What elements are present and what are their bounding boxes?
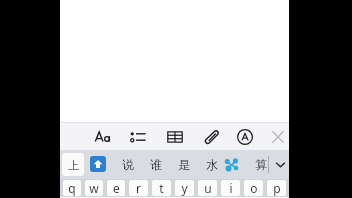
button[interactable]: Attach file: [200, 127, 220, 146]
button[interactable]: p: [267, 180, 286, 196]
button[interactable]: Bulleted list: [128, 127, 148, 146]
button[interactable]: 水: [201, 154, 223, 175]
button[interactable]: Expand candidates: [272, 156, 289, 173]
button[interactable]: 谁: [145, 154, 167, 175]
button[interactable]: 算: [250, 154, 272, 175]
staticText: q: [68, 180, 76, 196]
staticText: i: [229, 180, 233, 196]
button[interactable]: y: [175, 180, 194, 196]
button[interactable]: Insert table: [165, 127, 185, 146]
staticText: r: [136, 180, 141, 196]
button[interactable]: Close: [268, 127, 288, 146]
staticText: 说: [122, 157, 134, 172]
staticText: y: [181, 180, 188, 196]
staticText: u: [204, 180, 212, 196]
button[interactable]: Markup: [235, 127, 255, 146]
staticText: 是: [178, 157, 190, 172]
button[interactable]: w: [85, 180, 103, 196]
staticText: 上: [68, 158, 79, 172]
button[interactable]: e: [107, 180, 125, 196]
button[interactable]: i: [221, 180, 240, 196]
staticText: 水: [206, 157, 218, 172]
button[interactable]: u: [198, 180, 217, 196]
button[interactable]: o: [244, 180, 263, 196]
button[interactable]: q: [63, 180, 81, 196]
staticText: 算: [255, 157, 267, 172]
button[interactable]: 是: [173, 154, 195, 175]
staticText: t: [159, 180, 164, 196]
staticText: w: [89, 180, 99, 196]
button[interactable]: Shift: [90, 156, 106, 172]
button[interactable]: r: [129, 180, 148, 196]
staticText: o: [250, 180, 258, 196]
button[interactable]: 说: [117, 154, 139, 175]
button[interactable]: Emoji: [223, 156, 239, 172]
button[interactable]: Text format: [93, 127, 113, 146]
staticText: e: [113, 180, 120, 196]
staticText: 谁: [150, 157, 162, 172]
button[interactable]: 上: [62, 153, 84, 176]
button[interactable]: t: [152, 180, 171, 196]
staticText: p: [273, 180, 281, 196]
